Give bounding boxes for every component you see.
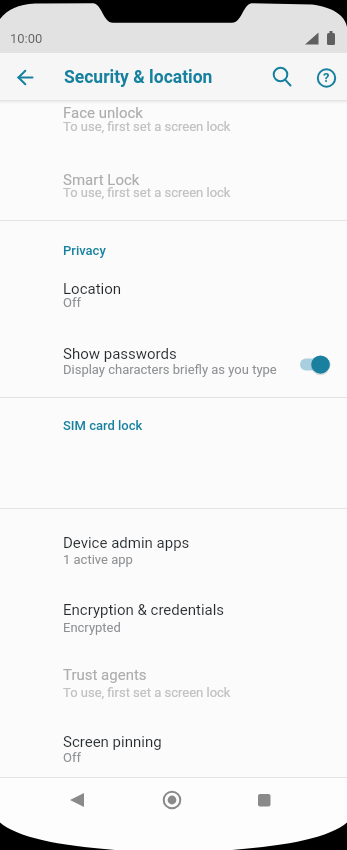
staticText: Screen pinning	[63, 733, 162, 751]
button[interactable]: Location	[0, 272, 347, 324]
button[interactable]: Trust agents	[0, 660, 347, 716]
staticText: Encryption & credentials	[63, 601, 225, 619]
button[interactable]	[158, 786, 186, 814]
staticText: Location	[63, 280, 122, 298]
button[interactable]: SIM card lock	[0, 398, 347, 458]
staticText: Device admin apps	[63, 534, 190, 552]
staticText: To use, first set a screen lock	[63, 119, 231, 134]
staticText: Off	[63, 750, 81, 765]
staticText: SIM card lock	[63, 418, 143, 433]
button[interactable]: ?	[307, 58, 345, 96]
staticText: Encrypted	[63, 620, 121, 635]
staticText: Face unlock	[63, 104, 143, 122]
staticText: To use, first set a screen lock	[63, 685, 231, 700]
button[interactable]	[262, 58, 300, 96]
staticText: Display characters briefly as you type	[63, 362, 277, 377]
staticText: To use, first set a screen lock	[63, 185, 231, 200]
staticText: Security & location	[64, 67, 213, 88]
button[interactable]: Screen pinning	[0, 727, 347, 777]
button[interactable]: Smart Lock	[0, 167, 347, 220]
button[interactable]: Face unlock	[0, 101, 347, 167]
staticText: Off	[63, 295, 81, 310]
staticText: Show passwords	[63, 345, 177, 363]
staticText: Smart Lock	[63, 171, 140, 189]
button[interactable]	[63, 786, 91, 814]
staticText: ?	[323, 70, 330, 85]
button[interactable]: Device admin apps	[0, 528, 347, 584]
button[interactable]: Show passwords	[0, 336, 347, 396]
staticText: Trust agents	[63, 666, 147, 684]
button[interactable]	[7, 58, 45, 96]
staticText: 1 active app	[63, 552, 133, 567]
button[interactable]	[250, 786, 278, 814]
staticText: 10:00	[10, 31, 43, 46]
button[interactable]: Encryption & credentials	[0, 595, 347, 651]
staticText: Privacy	[63, 243, 106, 258]
